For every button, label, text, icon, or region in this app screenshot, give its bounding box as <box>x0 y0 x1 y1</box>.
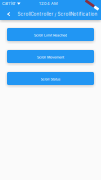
staticText: ScrollController / ScrollNotification <box>17 11 97 17</box>
staticText: Scroll Movement <box>37 55 64 59</box>
staticText: Carrier <box>2 1 16 6</box>
button[interactable]: Scroll Limit Reached <box>7 28 94 41</box>
button[interactable]: Back <box>0 7 17 20</box>
button[interactable]: Scroll Movement <box>7 50 94 63</box>
button[interactable]: Scroll Status <box>7 72 94 85</box>
staticText: 12:04 AM <box>39 1 58 6</box>
staticText: Scroll Limit Reached <box>34 33 67 37</box>
staticText: Scroll Status <box>40 77 60 81</box>
